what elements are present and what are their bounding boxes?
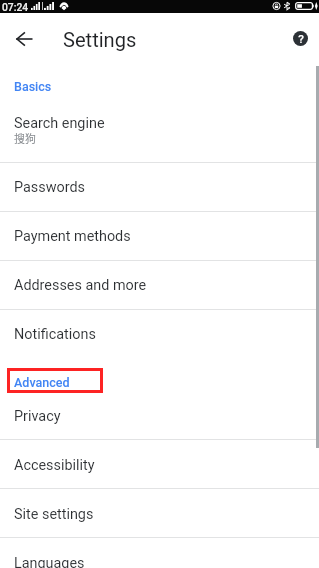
button[interactable]: Navigate up [7,22,41,56]
staticText: Basics [14,79,52,94]
staticText: Advanced [14,375,70,390]
button[interactable]: Search engine [0,95,319,163]
button[interactable]: Passwords [0,162,319,210]
staticText: Addresses and more [14,277,147,294]
button[interactable]: Privacy [0,391,319,439]
staticText: Accessibility [14,457,95,474]
staticText: Languages [14,555,85,568]
staticText: Payment methods [14,228,131,245]
staticText: 07:24 [2,1,29,13]
staticText: Settings [63,28,137,52]
button[interactable]: Notifications [0,309,319,357]
staticText: Search engine [14,115,105,132]
button[interactable]: Basics [0,62,319,95]
button[interactable]: Site settings [0,489,319,537]
button[interactable]: Help and feedback [285,23,315,53]
button[interactable]: Advanced [0,358,319,391]
button[interactable]: Addresses and more [0,260,319,308]
button[interactable]: Payment methods [0,211,319,259]
staticText: 搜狗 [14,130,36,146]
staticText: Site settings [14,506,94,523]
staticText: ? [298,32,304,46]
button[interactable]: Accessibility [0,440,319,488]
staticText: Privacy [14,408,61,425]
button[interactable]: Languages [0,538,319,568]
staticText: Notifications [14,326,96,343]
staticText: Passwords [14,179,85,196]
